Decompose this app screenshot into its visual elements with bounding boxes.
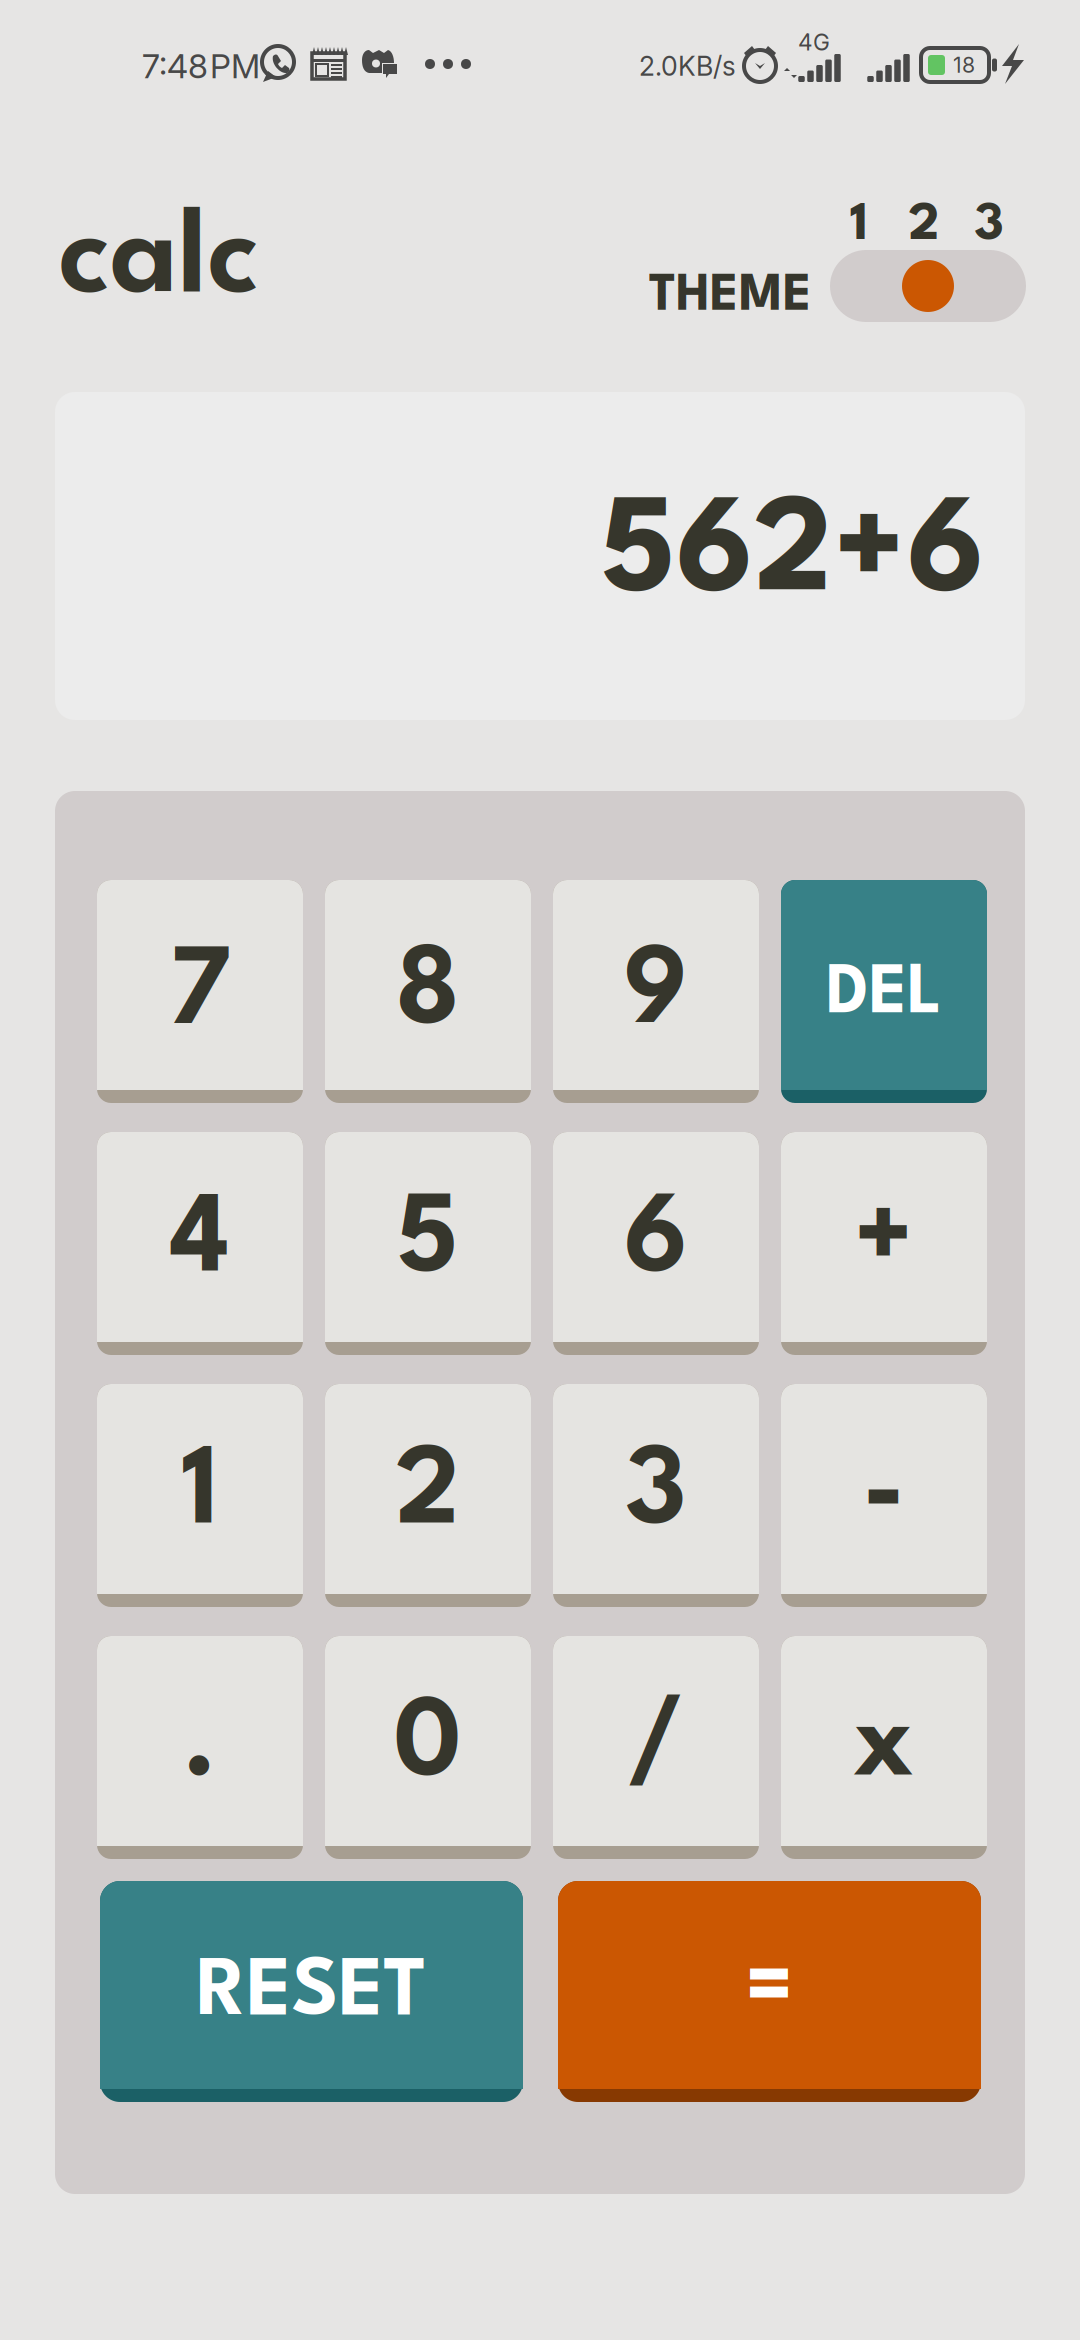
- button[interactable]: DEL: [781, 880, 987, 1103]
- staticText: 0: [394, 1694, 462, 1800]
- staticText: 562+6: [601, 492, 985, 620]
- button[interactable]: 3: [553, 1384, 759, 1607]
- button[interactable]: x: [781, 1636, 987, 1859]
- staticText: -: [862, 1442, 905, 1548]
- staticText: 1: [181, 1442, 218, 1548]
- button[interactable]: /: [553, 1636, 759, 1859]
- staticText: 3: [974, 201, 1003, 251]
- button[interactable]: Theme switcher, theme 2 selected: [830, 250, 1026, 322]
- staticText: +: [853, 1190, 914, 1296]
- staticText: 2: [395, 1442, 460, 1548]
- staticText: PM: [210, 46, 260, 86]
- staticText: 6: [624, 1190, 688, 1296]
- staticText: RESET: [196, 1955, 426, 2033]
- staticText: 18: [953, 52, 975, 78]
- staticText: THEME: [649, 272, 812, 322]
- staticText: =: [745, 1949, 793, 2035]
- button[interactable]: =: [558, 1881, 981, 2102]
- staticText: 8: [396, 942, 460, 1048]
- button[interactable]: 2: [891, 203, 956, 249]
- staticText: 9: [624, 942, 688, 1048]
- staticText: 7: [169, 942, 231, 1048]
- staticText: 2: [908, 201, 939, 251]
- button[interactable]: 8: [325, 880, 531, 1103]
- button[interactable]: 1: [826, 203, 891, 249]
- button[interactable]: .: [97, 1636, 303, 1859]
- button[interactable]: 6: [553, 1132, 759, 1355]
- button[interactable]: 0: [325, 1636, 531, 1859]
- staticText: 1: [850, 201, 868, 251]
- button[interactable]: 7: [97, 880, 303, 1103]
- staticText: 3: [625, 1442, 686, 1548]
- button[interactable]: 3: [956, 203, 1021, 249]
- staticText: x: [853, 1694, 915, 1800]
- button[interactable]: RESET: [100, 1881, 523, 2102]
- button[interactable]: 4: [97, 1132, 303, 1355]
- staticText: .: [182, 1694, 217, 1800]
- button[interactable]: +: [781, 1132, 987, 1355]
- button[interactable]: 9: [553, 880, 759, 1103]
- staticText: /: [627, 1694, 684, 1800]
- button[interactable]: 2: [325, 1384, 531, 1607]
- staticText: 4: [170, 1190, 230, 1296]
- button[interactable]: -: [781, 1384, 987, 1607]
- staticText: 7:48: [142, 46, 208, 86]
- staticText: 4G: [798, 29, 830, 56]
- button[interactable]: 1: [97, 1384, 303, 1607]
- button[interactable]: 5: [325, 1132, 531, 1355]
- staticText: 5: [397, 1190, 459, 1296]
- staticText: calc: [58, 206, 259, 318]
- staticText: DEL: [826, 962, 942, 1028]
- staticText: 2.0KB/s: [639, 50, 736, 82]
